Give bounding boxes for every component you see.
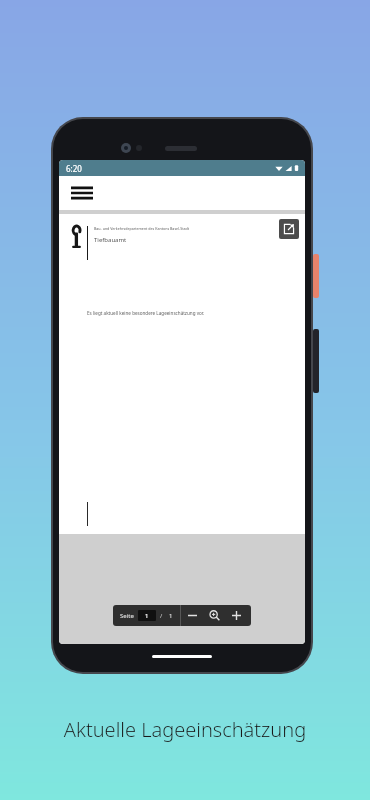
button[interactable]: In externer App öffnen — [279, 219, 299, 239]
button[interactable]: Verkleinern — [181, 605, 203, 626]
staticText: 1 — [145, 612, 149, 620]
staticText: Aktuelle Lageeinschätzung — [0, 716, 370, 743]
staticText: Es liegt aktuell keine besondere Lageein… — [87, 310, 205, 316]
staticText: 6:20 — [66, 163, 82, 174]
button[interactable]: Menü öffnen — [65, 178, 99, 208]
staticText: 1 — [169, 612, 173, 620]
staticText: / — [160, 612, 163, 620]
button[interactable]: Vergrössern — [225, 605, 247, 626]
button[interactable]: Seite — [120, 610, 173, 621]
button[interactable]: Zoom zurücksetzen — [203, 605, 225, 626]
staticText: Bau- und Verkehrsdepartement des Kantons… — [94, 226, 190, 231]
staticText: Seite — [120, 612, 134, 620]
staticText: Tiefbauamt — [94, 236, 127, 244]
